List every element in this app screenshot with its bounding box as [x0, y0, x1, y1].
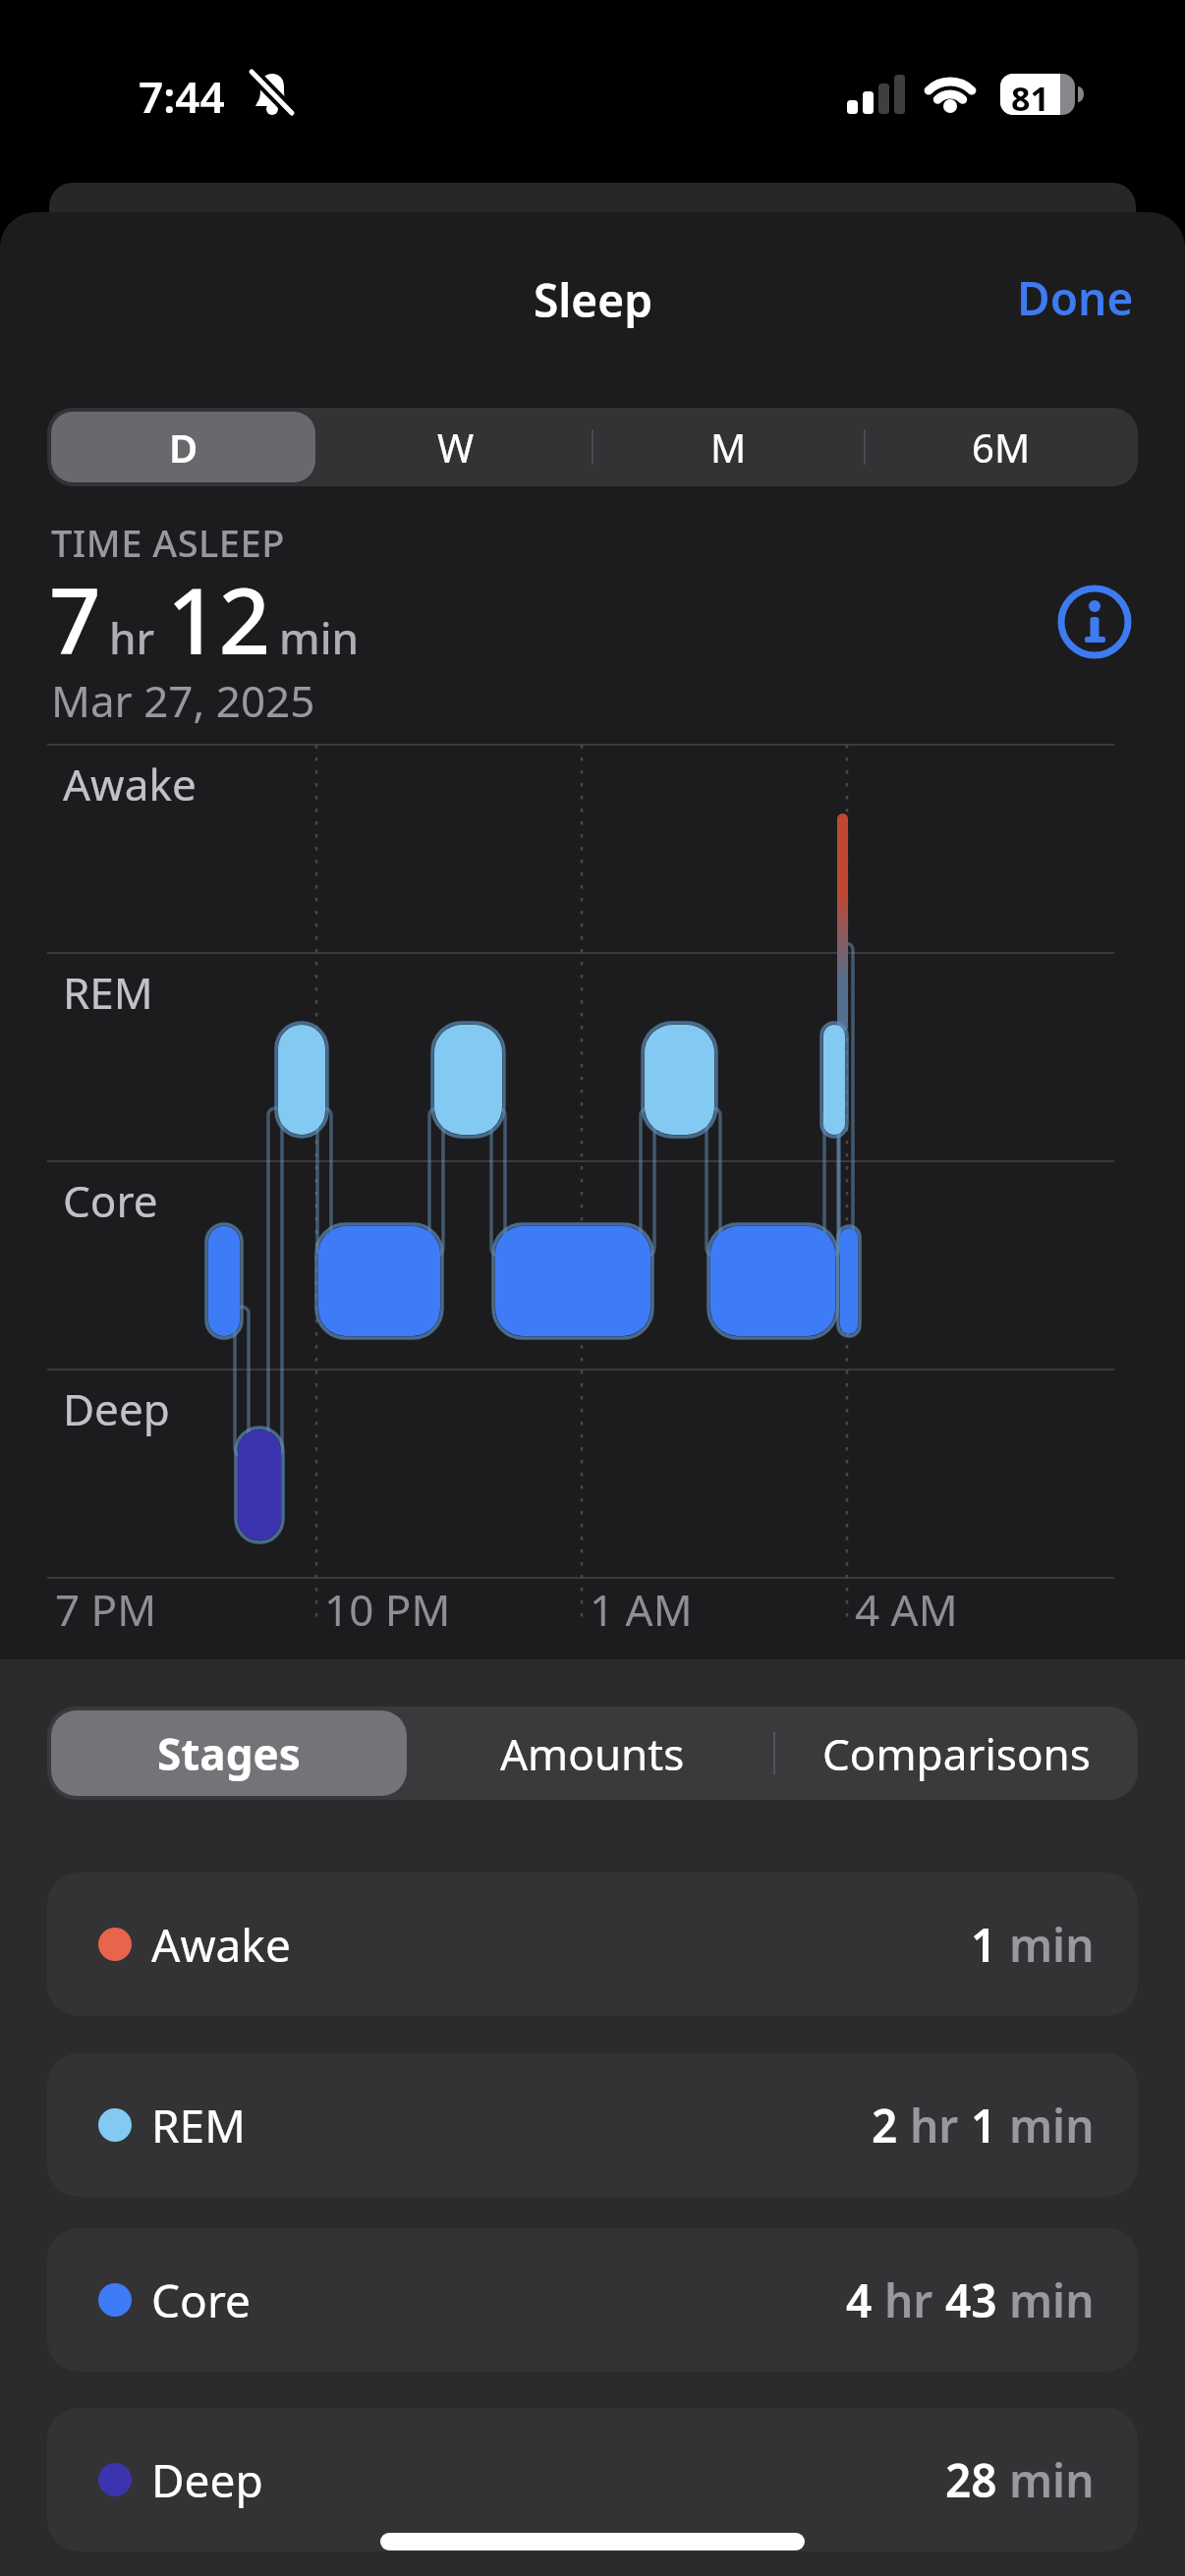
staticText: 7 [49, 558, 101, 681]
staticText: hr [898, 2095, 971, 2156]
staticText: W [437, 420, 475, 474]
staticText: 10 PM [324, 1580, 451, 1639]
staticText: 2 [872, 2095, 898, 2156]
staticText: Mar 27, 2025 [51, 671, 315, 730]
button[interactable]: W [319, 408, 592, 486]
staticText: Deep [151, 2449, 263, 2511]
button[interactable]: REM [47, 2053, 1138, 2197]
button[interactable]: Deep [47, 2408, 1138, 2551]
staticText: M [710, 420, 747, 474]
staticText: hr [873, 2269, 945, 2331]
staticText: Amounts [500, 1724, 685, 1783]
staticText: 4 [846, 2269, 873, 2331]
staticText: Sleep [534, 269, 652, 331]
staticText: 43 [945, 2269, 997, 2331]
staticText: 1 [971, 1914, 997, 1976]
button[interactable]: Stages [51, 1710, 407, 1796]
staticText: 81 [1011, 76, 1049, 121]
button[interactable]: D [51, 412, 315, 482]
staticText: min [997, 2095, 1095, 2156]
button[interactable]: M [592, 408, 865, 486]
button[interactable]: Comparisons [774, 1707, 1138, 1800]
button[interactable]: Core [47, 2228, 1138, 2372]
button[interactable]: Awake [47, 1873, 1138, 2016]
staticText: Core [151, 2269, 251, 2331]
staticText: Awake [151, 1914, 291, 1976]
staticText: Core [63, 1171, 158, 1230]
staticText: 7 PM [55, 1580, 157, 1639]
staticText: 1 [971, 2095, 997, 2156]
staticText: D [169, 420, 198, 474]
staticText: 28 [945, 2449, 997, 2511]
staticText: 6M [972, 420, 1031, 474]
staticText: Deep [63, 1379, 170, 1438]
staticText: min [997, 2269, 1095, 2331]
staticText: Comparisons [822, 1724, 1091, 1783]
button[interactable] [1057, 585, 1132, 659]
staticText: REM [151, 2095, 246, 2156]
staticText: TIME ASLEEP [51, 517, 285, 568]
staticText: Awake [63, 755, 197, 813]
button[interactable]: Amounts [411, 1707, 774, 1800]
staticText: 7:44 [139, 67, 225, 126]
staticText: min [279, 608, 360, 667]
staticText: 4 AM [855, 1580, 958, 1639]
staticText: Done [1017, 267, 1134, 329]
button[interactable]: 6M [865, 408, 1138, 486]
staticText: Stages [157, 1724, 301, 1783]
staticText: min [997, 1914, 1095, 1976]
staticText: REM [63, 963, 153, 1022]
staticText: hr [109, 608, 155, 667]
staticText: 1 AM [590, 1580, 693, 1639]
button[interactable]: Done [1005, 255, 1146, 341]
staticText: 12 [167, 558, 271, 681]
staticText: min [997, 2449, 1095, 2511]
